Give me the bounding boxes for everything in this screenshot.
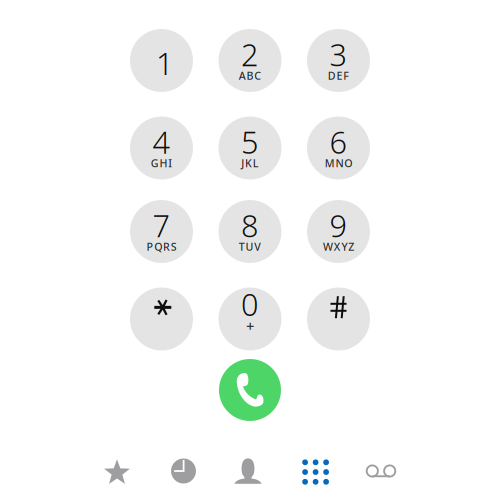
button[interactable]: Call — [219, 359, 281, 421]
staticText: 9 — [329, 205, 347, 246]
button[interactable]: Contacts — [218, 446, 278, 496]
staticText: PQRS — [146, 240, 177, 254]
button[interactable]: 3 — [307, 29, 370, 92]
button[interactable]: 1 — [130, 29, 193, 92]
staticText: WXYZ — [323, 240, 354, 254]
staticText: 6 — [329, 121, 347, 162]
button[interactable]: Star — [130, 287, 193, 350]
staticText: 5 — [241, 121, 259, 162]
button[interactable]: 2 — [218, 29, 281, 92]
button[interactable]: Voicemail — [351, 446, 411, 496]
staticText: 1 — [156, 43, 174, 83]
staticText: MNO — [325, 156, 352, 170]
button[interactable]: 6 — [307, 116, 370, 179]
staticText: TUV — [239, 240, 261, 254]
staticText: 2 — [241, 34, 259, 75]
staticText: + — [246, 316, 254, 336]
staticText: 7 — [152, 205, 170, 246]
staticText: 3 — [329, 34, 347, 75]
button[interactable]: Recents — [153, 446, 213, 496]
button[interactable]: Favorites — [87, 447, 147, 497]
staticText: 8 — [241, 205, 259, 246]
staticText: GHI — [151, 156, 172, 170]
staticText: 0 — [241, 284, 259, 324]
button[interactable]: 8 — [218, 200, 281, 263]
button[interactable]: 9 — [307, 200, 370, 263]
button[interactable]: 4 — [130, 116, 193, 179]
button[interactable]: 7 — [130, 200, 193, 263]
staticText: ABC — [239, 69, 261, 83]
staticText: DEF — [328, 69, 349, 83]
button[interactable]: Keypad — [285, 447, 345, 497]
button[interactable]: 5 — [218, 116, 281, 179]
button[interactable]: 0 — [218, 287, 281, 350]
staticText: JKL — [241, 156, 259, 170]
staticText: 4 — [152, 121, 170, 162]
button[interactable]: Pound — [307, 287, 370, 350]
